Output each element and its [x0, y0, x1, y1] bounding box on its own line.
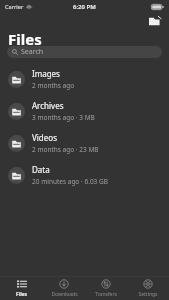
staticText: Search	[21, 47, 44, 57]
button[interactable]: Search	[7, 46, 162, 58]
staticText: Images	[32, 68, 60, 79]
staticText: 3 months ago · 3 MB	[32, 113, 95, 122]
staticText: Videos	[32, 132, 57, 143]
staticText: Carrier	[5, 3, 24, 10]
staticText: Data	[32, 164, 50, 175]
staticText: Files	[16, 291, 27, 298]
button[interactable]: Images	[0, 63, 169, 95]
button[interactable]: New folder	[147, 13, 163, 29]
staticText: 2 months ago · 23 MB	[32, 145, 99, 154]
staticText: Downloads	[51, 291, 78, 298]
button[interactable]: Settings	[127, 277, 169, 300]
button[interactable]: Data	[0, 159, 169, 191]
button[interactable]: Files	[0, 277, 43, 300]
button[interactable]: Archives	[0, 95, 169, 127]
button[interactable]: Downloads	[43, 277, 85, 300]
button[interactable]: Videos	[0, 127, 169, 159]
staticText: 2 months ago	[32, 81, 75, 90]
staticText: 20 minutes ago · 6.03 GB	[32, 177, 108, 186]
staticText: Settings	[138, 291, 158, 298]
staticText: 6:20 PM	[73, 3, 96, 11]
staticText: Transfers	[95, 291, 117, 298]
button[interactable]: Transfers	[85, 277, 127, 300]
staticText: Archives	[32, 100, 64, 111]
staticText: Files	[8, 29, 42, 46]
